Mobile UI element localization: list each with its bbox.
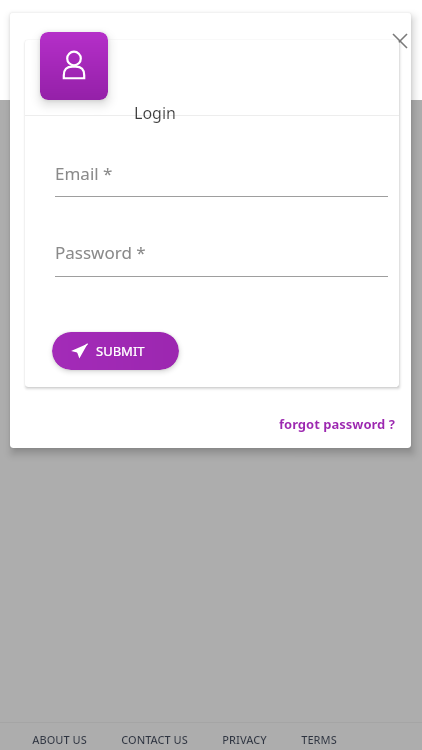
button[interactable]: PRIVACY [220, 730, 269, 749]
button[interactable]: forgot password ? [275, 411, 399, 437]
staticText: Login [134, 102, 176, 124]
button[interactable]: Email * [45, 152, 379, 196]
button[interactable]: Close [380, 21, 411, 61]
staticText: ABOUT US [32, 732, 87, 747]
button[interactable]: User account [40, 32, 108, 100]
staticText: PRIVACY [222, 732, 267, 747]
button[interactable]: SUBMIT [52, 332, 179, 370]
button[interactable]: TERMS [299, 730, 339, 749]
staticText: forgot password ? [279, 415, 395, 433]
staticText: Email * [55, 162, 113, 185]
staticText: Password * [55, 241, 146, 264]
button[interactable]: Password * [45, 231, 379, 275]
staticText: SUBMIT [96, 342, 145, 360]
staticText: TERMS [301, 732, 337, 747]
staticText: CONTACT US [121, 732, 188, 747]
button[interactable]: CONTACT US [119, 730, 190, 749]
button[interactable]: ABOUT US [30, 730, 89, 749]
